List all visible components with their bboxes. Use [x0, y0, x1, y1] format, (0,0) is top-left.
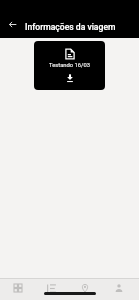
staticText: Testando 16/03: [49, 62, 90, 69]
button[interactable]: Profile: [102, 279, 136, 297]
button[interactable]: Documents: [34, 279, 68, 297]
button[interactable]: Back: [5, 17, 20, 32]
button[interactable]: Places: [68, 279, 102, 297]
button[interactable]: Home: [1, 279, 34, 297]
staticText: Informações da viagem: [25, 22, 116, 32]
button[interactable]: Testando 16/03: [34, 41, 105, 90]
